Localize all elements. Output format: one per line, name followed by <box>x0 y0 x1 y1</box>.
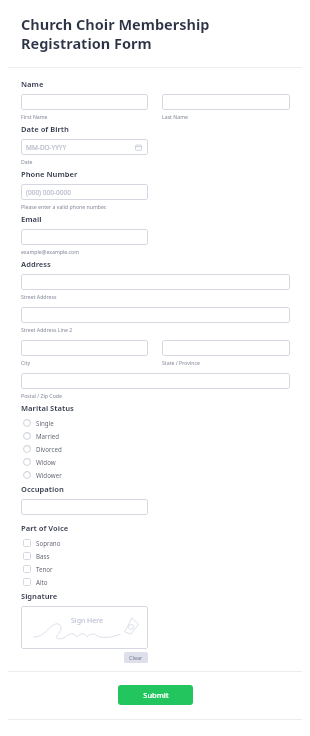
staticText: Street Address <box>21 293 57 300</box>
button[interactable] <box>21 499 148 515</box>
staticText: Church Choir Membership Registration For… <box>21 14 286 53</box>
button[interactable]: Married <box>21 429 141 442</box>
button[interactable] <box>21 307 290 323</box>
staticText: Married <box>36 432 60 440</box>
staticText: Tenor <box>36 565 53 573</box>
staticText: Widow <box>36 458 56 466</box>
button[interactable] <box>21 94 148 110</box>
staticText: Postal / Zip Code <box>21 392 62 399</box>
staticText: Clear <box>129 654 143 661</box>
button[interactable]: Submit <box>118 685 193 705</box>
button[interactable]: Bass <box>21 549 141 562</box>
staticText: Signature <box>21 591 58 601</box>
button[interactable] <box>162 94 290 110</box>
button[interactable]: Clear <box>124 652 148 663</box>
staticText: Last Name <box>162 113 188 120</box>
staticText: Date of Birth <box>21 124 69 134</box>
staticText: Date <box>21 158 33 165</box>
staticText: Divorced <box>36 445 62 453</box>
staticText: Submit <box>143 690 169 700</box>
staticText: Widower <box>36 471 62 479</box>
staticText: Part of Voice <box>21 523 69 533</box>
staticText: Phone Number <box>21 169 78 179</box>
staticText: Street Address Line 2 <box>21 326 73 333</box>
button[interactable]: Divorced <box>21 442 141 455</box>
staticText: First Name <box>21 113 48 120</box>
staticText: MM-DD-YYYY <box>26 143 67 152</box>
button[interactable] <box>21 373 290 389</box>
staticText: State / Province <box>162 359 200 366</box>
button[interactable]: Tenor <box>21 562 141 575</box>
button[interactable]: Single <box>21 416 141 429</box>
staticText: Please enter a valid phone number. <box>21 203 107 210</box>
button[interactable]: Widow <box>21 455 141 468</box>
staticText: Address <box>21 259 51 269</box>
button[interactable] <box>21 274 290 290</box>
button[interactable] <box>21 340 148 356</box>
button[interactable]: MM-DD-YYYY <box>21 139 148 155</box>
staticText: Occupation <box>21 484 64 494</box>
button[interactable]: (000) 000-0000 <box>21 184 148 200</box>
button[interactable]: Widower <box>21 468 141 481</box>
staticText: example@example.com <box>21 248 80 255</box>
button[interactable]: Alto <box>21 575 141 588</box>
staticText: Sign Here <box>71 616 103 626</box>
staticText: Alto <box>36 578 48 586</box>
staticText: Name <box>21 79 44 89</box>
staticText: (000) 000-0000 <box>26 188 71 197</box>
button[interactable]: Soprano <box>21 536 141 549</box>
staticText: Bass <box>36 552 50 560</box>
button[interactable] <box>162 340 290 356</box>
button[interactable]: Signature pad <box>21 606 148 649</box>
staticText: Marital Status <box>21 403 74 413</box>
staticText: Soprano <box>36 539 61 547</box>
staticText: City <box>21 359 31 366</box>
staticText: Email <box>21 214 42 224</box>
staticText: Single <box>36 419 54 427</box>
button[interactable] <box>21 229 148 245</box>
